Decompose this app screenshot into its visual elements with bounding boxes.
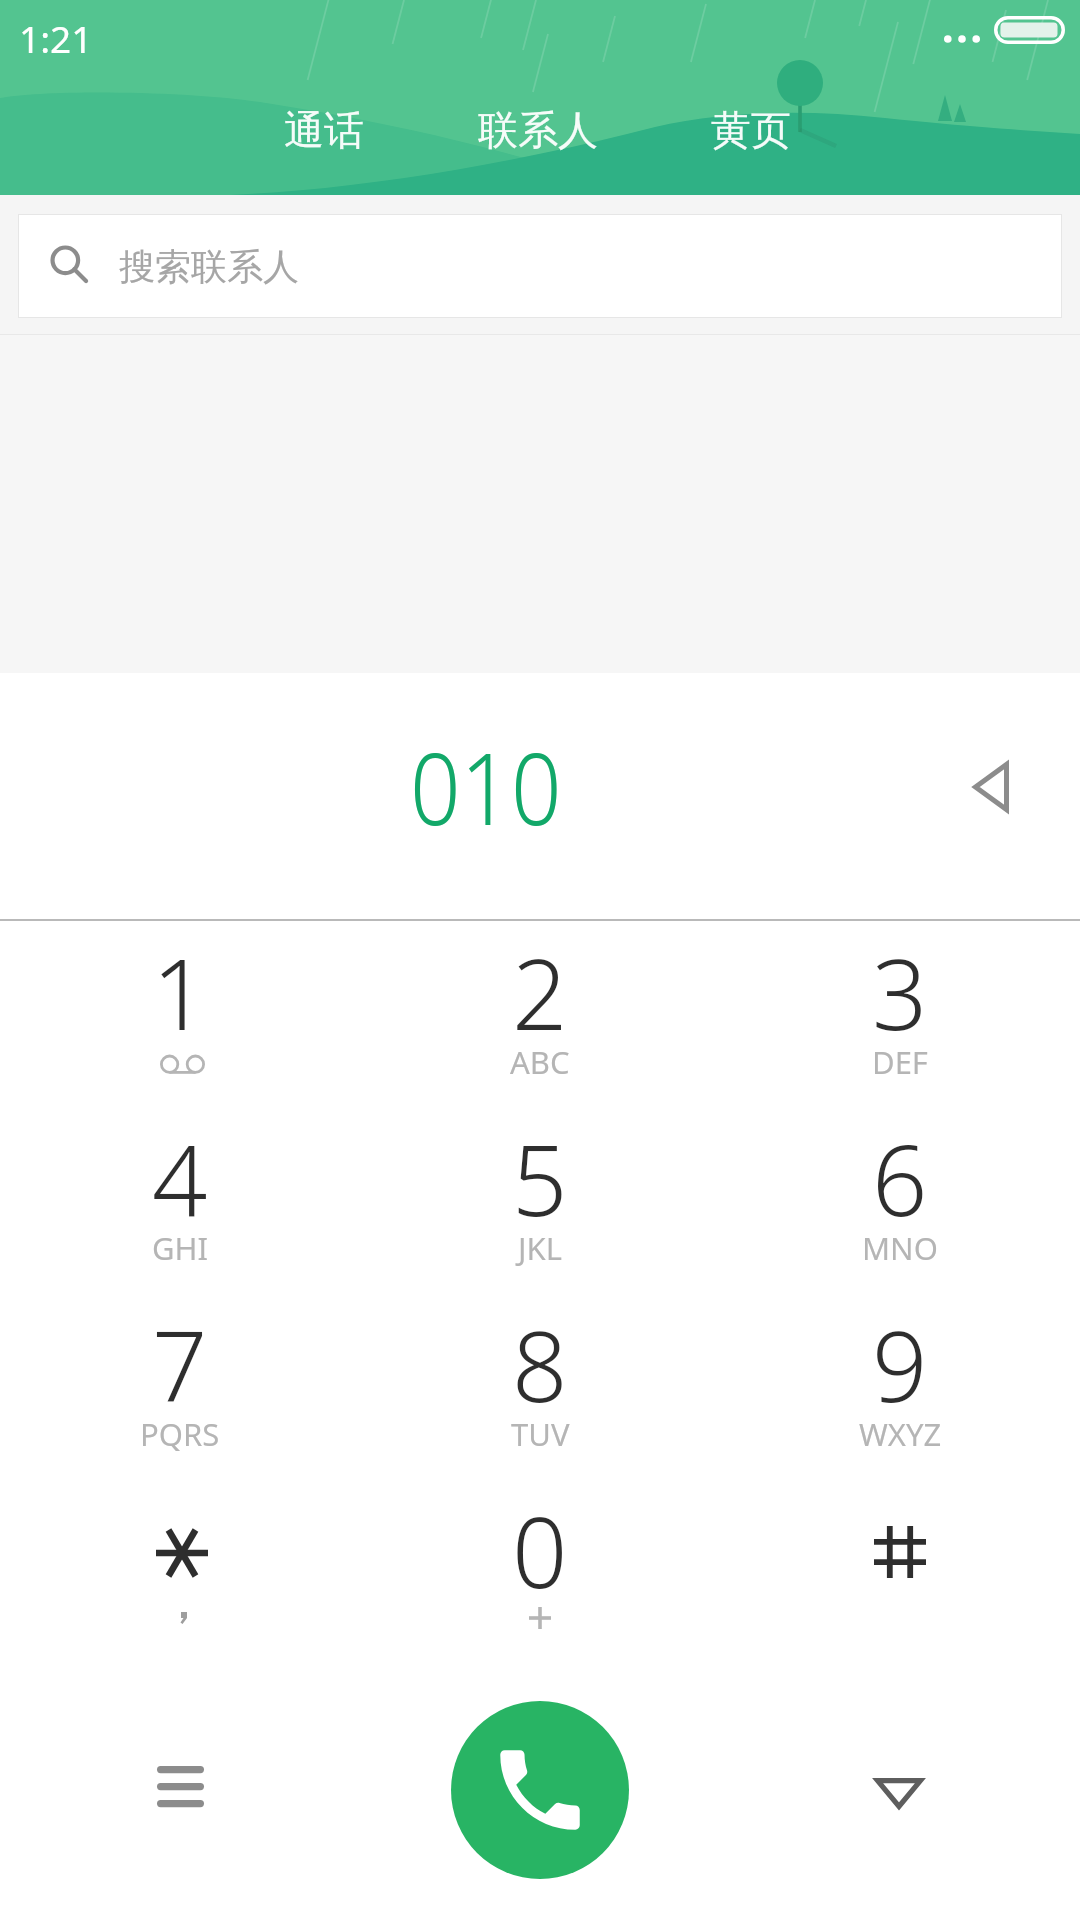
staticText: MNO — [862, 1227, 938, 1269]
staticText: 0 — [512, 1484, 568, 1616]
staticText: 8 — [512, 1298, 568, 1430]
staticText: 6 — [872, 1112, 928, 1244]
staticText: GHI — [152, 1227, 209, 1269]
button[interactable]: 1 — [0, 921, 360, 1107]
staticText: 联系人 — [478, 105, 598, 155]
staticText: DEF — [872, 1041, 928, 1083]
button[interactable]: Backspace — [931, 727, 1051, 847]
staticText: 010 — [410, 718, 562, 854]
button[interactable]: Call log — [125, 1728, 235, 1838]
staticText: PQRS — [140, 1413, 220, 1455]
button[interactable] — [720, 1479, 1080, 1665]
button[interactable]: 8 — [360, 1293, 720, 1479]
button[interactable]: 0 — [360, 1479, 720, 1665]
staticText: TUV — [511, 1413, 570, 1455]
button[interactable]: Call — [451, 1701, 629, 1879]
button[interactable]: 通话 — [284, 105, 364, 155]
button[interactable]: 7 — [0, 1293, 360, 1479]
button[interactable] — [0, 1479, 360, 1665]
staticText: 1:21 — [19, 13, 93, 63]
button[interactable]: 3 — [720, 921, 1080, 1107]
staticText: 黄页 — [711, 105, 791, 155]
staticText: 7 — [152, 1298, 208, 1430]
staticText: JKL — [518, 1227, 562, 1269]
staticText: 搜索联系人 — [119, 244, 299, 289]
button[interactable]: 联系人 — [478, 105, 598, 155]
button[interactable]: 2 — [360, 921, 720, 1107]
button[interactable]: 黄页 — [711, 105, 791, 155]
staticText: 2 — [512, 926, 568, 1058]
staticText: 1 — [152, 926, 208, 1058]
staticText: 9 — [872, 1298, 928, 1430]
staticText: 3 — [872, 926, 928, 1058]
button[interactable]: 9 — [720, 1293, 1080, 1479]
button[interactable]: Hide keypad — [844, 1738, 954, 1848]
staticText: 5 — [512, 1112, 568, 1244]
staticText: 4 — [152, 1112, 208, 1244]
staticText: 通话 — [284, 105, 364, 155]
button[interactable]: 6 — [720, 1107, 1080, 1293]
button[interactable]: 4 — [0, 1107, 360, 1293]
button[interactable]: 5 — [360, 1107, 720, 1293]
button[interactable]: 搜索联系人 — [18, 214, 1062, 318]
staticText: WXYZ — [859, 1413, 942, 1455]
staticText: ABC — [510, 1041, 570, 1083]
